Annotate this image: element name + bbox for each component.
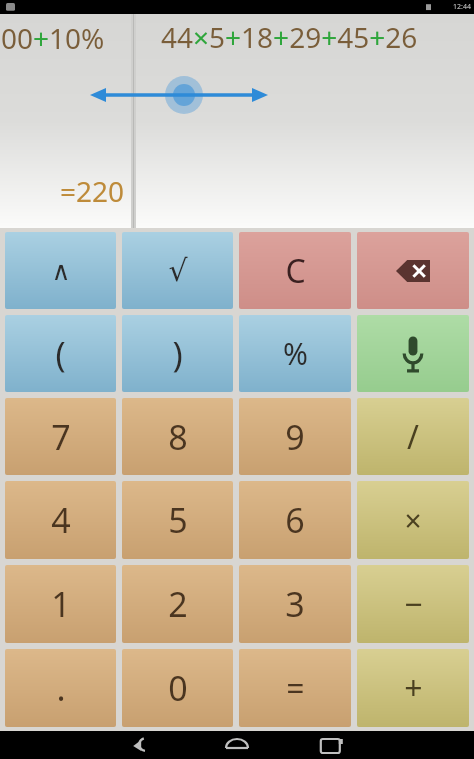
staticText: ) <box>172 331 183 377</box>
button[interactable]: 4 <box>5 481 116 559</box>
staticText: − <box>404 582 423 626</box>
staticText: √ <box>168 253 188 288</box>
button[interactable]: . <box>5 649 116 727</box>
staticText: ∧ <box>51 256 71 286</box>
button[interactable]: 5 <box>122 481 233 559</box>
button[interactable]: + <box>357 649 469 727</box>
button[interactable]: 3 <box>239 565 351 643</box>
button[interactable]: % <box>239 315 351 392</box>
staticText: 7 <box>51 414 71 460</box>
staticText: 247+ <box>136 57 474 95</box>
staticText: 1 <box>51 581 71 627</box>
button[interactable]: ∧ <box>5 232 116 309</box>
staticText: 6 <box>285 497 305 543</box>
button[interactable]: C <box>239 232 351 309</box>
button[interactable]: / <box>357 398 469 475</box>
staticText: 3 <box>285 581 305 627</box>
staticText: . <box>56 665 66 711</box>
button[interactable]: √ <box>122 232 233 309</box>
staticText: 0 <box>168 665 188 711</box>
button[interactable]: 8 <box>122 398 233 475</box>
staticText: % <box>283 333 308 374</box>
staticText: 5 <box>168 497 188 543</box>
staticText: / <box>407 415 419 459</box>
staticText: 12:44 <box>453 2 471 12</box>
staticText: = <box>286 666 305 710</box>
staticText: 2 <box>168 581 188 627</box>
staticText: 4 <box>51 497 71 543</box>
button[interactable]: 6 <box>239 481 351 559</box>
button[interactable]: × <box>357 481 469 559</box>
staticText: 00+10% <box>1 19 105 57</box>
button[interactable]: = <box>239 649 351 727</box>
button[interactable]: Backspace <box>357 232 469 309</box>
staticText: + <box>404 666 423 710</box>
button[interactable]: 7 <box>5 398 116 475</box>
button[interactable]: 1 <box>5 565 116 643</box>
staticText: 9 <box>285 414 305 460</box>
staticText: ( <box>55 331 66 377</box>
staticText: C <box>285 249 306 293</box>
button[interactable]: ( <box>5 315 116 392</box>
button[interactable]: Voice input <box>357 315 469 392</box>
staticText: 8 <box>168 414 188 460</box>
button[interactable]: 9 <box>239 398 351 475</box>
staticText: 44×5+18+29+45+26 <box>161 18 418 56</box>
button[interactable]: − <box>357 565 469 643</box>
staticText: × <box>404 500 422 541</box>
button[interactable]: ) <box>122 315 233 392</box>
staticText: =220 <box>60 172 125 210</box>
button[interactable]: 0 <box>122 649 233 727</box>
button[interactable]: 2 <box>122 565 233 643</box>
